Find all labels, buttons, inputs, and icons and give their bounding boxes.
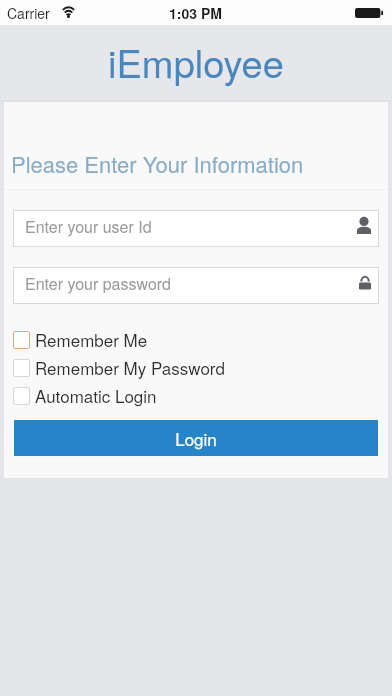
staticText: Remember Me	[35, 327, 148, 351]
button[interactable]: Automatic Login	[4, 382, 388, 410]
other: Password	[359, 275, 371, 290]
staticText: Remember My Password	[35, 355, 225, 379]
button[interactable]: Enter your password	[13, 267, 379, 304]
button[interactable]: Login	[14, 420, 378, 456]
button[interactable]: Enter your user Id	[13, 210, 379, 247]
staticText: Login	[175, 426, 217, 450]
staticText: Enter your password	[25, 272, 172, 295]
staticText: 1:03 PM	[169, 3, 222, 23]
other: Wi-Fi	[60, 6, 77, 18]
staticText: iEmployee	[108, 34, 284, 88]
button[interactable]: Remember My Password	[4, 354, 388, 382]
staticText: Carrier	[7, 3, 50, 23]
staticText: Please Enter Your Information	[11, 148, 304, 180]
button[interactable]: Remember Me	[4, 326, 388, 354]
staticText: Enter your user Id	[25, 215, 152, 238]
other: User	[357, 217, 371, 234]
staticText: Automatic Login	[35, 383, 157, 407]
